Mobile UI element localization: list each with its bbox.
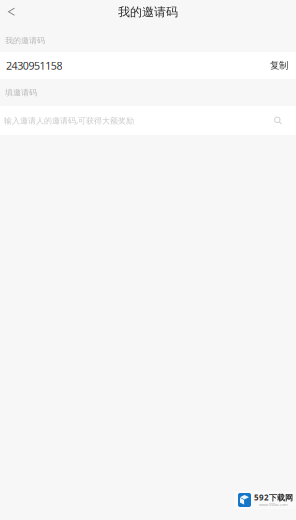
button[interactable]: 返回	[0, 0, 24, 24]
staticText: 填邀请码	[5, 88, 37, 97]
staticText: 我的邀请码	[118, 5, 178, 19]
staticText: 复制	[270, 60, 288, 71]
staticText: 2430951158	[6, 58, 62, 73]
staticText: 我的邀请码	[5, 36, 45, 45]
staticText: 592下载网	[254, 492, 293, 503]
staticText: 输入邀请人的邀请码,可获得大额奖励	[4, 115, 134, 126]
staticText: www.592xz.com	[259, 502, 288, 507]
button[interactable]: 搜索	[268, 106, 288, 135]
button[interactable]: 复制	[267, 52, 291, 79]
